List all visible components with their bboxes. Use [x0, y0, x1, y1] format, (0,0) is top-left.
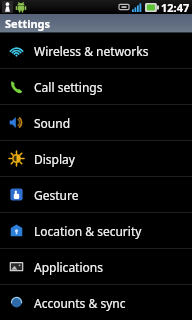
button[interactable]: Accounts & sync — [0, 285, 192, 320]
staticText: Call settings — [34, 79, 103, 95]
button[interactable]: Display — [0, 141, 192, 176]
staticText: Applications — [34, 259, 103, 275]
button[interactable]: Sound — [0, 105, 192, 140]
staticText: Location & security — [34, 223, 142, 239]
button[interactable]: Wireless & networks — [0, 33, 192, 68]
button[interactable]: Applications — [0, 249, 192, 284]
staticText: Gesture — [34, 187, 79, 203]
staticText: Sound — [34, 115, 71, 131]
button[interactable]: Gesture — [0, 177, 192, 212]
button[interactable]: Call settings — [0, 69, 192, 104]
staticText: Display — [34, 151, 75, 167]
staticText: Accounts & sync — [34, 295, 126, 311]
button[interactable]: Location & security — [0, 213, 192, 248]
staticText: 12:47 — [161, 0, 190, 14]
staticText: Wireless & networks — [34, 43, 149, 59]
staticText: Settings — [5, 16, 51, 31]
